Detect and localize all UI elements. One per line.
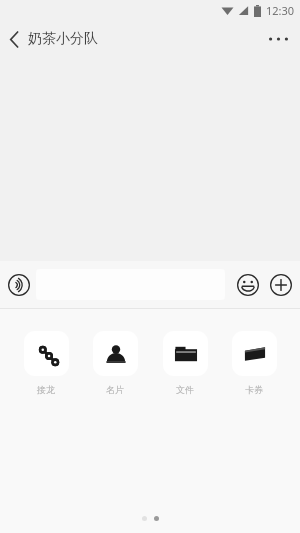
button[interactable]: 文件	[155, 331, 215, 395]
staticText: 文件	[176, 384, 194, 395]
button[interactable]: 卡券	[224, 331, 284, 395]
button[interactable]: Voice input	[0, 266, 36, 304]
button[interactable]: 接龙	[16, 331, 76, 395]
staticText: 卡券	[245, 384, 263, 395]
button[interactable]: 名片	[85, 331, 145, 395]
staticText: 名片	[106, 384, 124, 395]
button[interactable]: 奶茶小分队	[0, 24, 106, 54]
button[interactable]: More options	[257, 27, 300, 51]
staticText: 奶茶小分队	[28, 30, 98, 48]
button[interactable]: More functions	[266, 270, 300, 300]
staticText: 12:30	[266, 3, 295, 18]
button[interactable]: Emoji	[233, 270, 263, 300]
staticText: 接龙	[37, 384, 55, 395]
